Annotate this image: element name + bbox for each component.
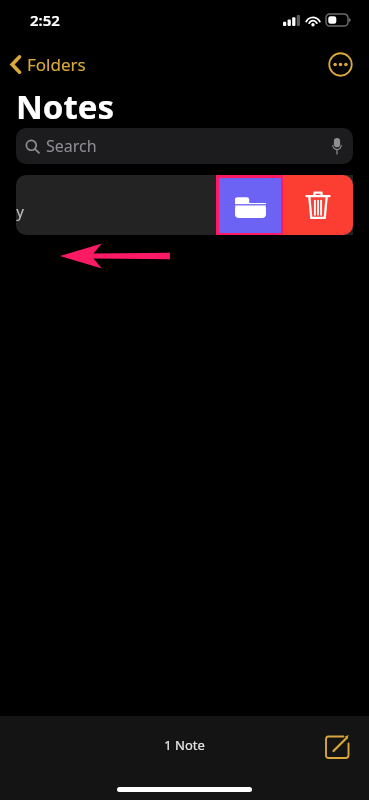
- button[interactable]: Delete: [283, 175, 353, 235]
- staticText: Search: [46, 135, 97, 157]
- button[interactable]: Search: [16, 128, 353, 164]
- button[interactable]: New note: [319, 728, 355, 764]
- staticText: ry: [16, 201, 24, 221]
- staticText: Notes: [16, 84, 115, 128]
- button[interactable]: Folders: [0, 49, 96, 80]
- button[interactable]: ry: [16, 175, 353, 235]
- staticText: Folders: [27, 53, 86, 76]
- staticText: 2:52: [30, 10, 60, 30]
- button[interactable]: Move to folder: [216, 175, 283, 235]
- button[interactable]: More options: [323, 47, 357, 81]
- staticText: 1 Note: [164, 736, 205, 754]
